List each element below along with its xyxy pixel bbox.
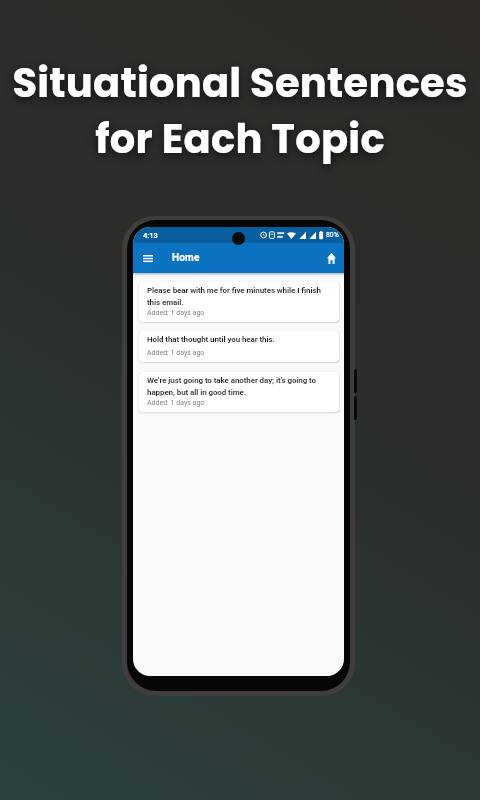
button[interactable]: Hold that thought until you hear this.	[139, 331, 339, 362]
staticText: We’re just going to take another day; it…	[147, 376, 333, 397]
button[interactable]: Please bear with me for five minutes whi…	[139, 282, 339, 322]
staticText: Added: 1 days ago	[147, 399, 205, 407]
button[interactable]	[322, 249, 340, 267]
staticText: for Each Topic	[95, 111, 385, 167]
staticText: Please bear with me for five minutes whi…	[147, 286, 333, 307]
staticText: Situational Sentences	[12, 55, 468, 111]
staticText: Added: 1 days ago	[147, 309, 205, 317]
staticText: 4:13	[143, 231, 158, 240]
staticText: Added: 1 days ago	[147, 349, 205, 357]
staticText: Home	[172, 252, 200, 264]
button[interactable]	[139, 249, 157, 267]
staticText: 80%	[326, 231, 339, 239]
button[interactable]: We’re just going to take another day; it…	[139, 372, 339, 412]
staticText: Hold that thought until you hear this.	[147, 335, 275, 344]
